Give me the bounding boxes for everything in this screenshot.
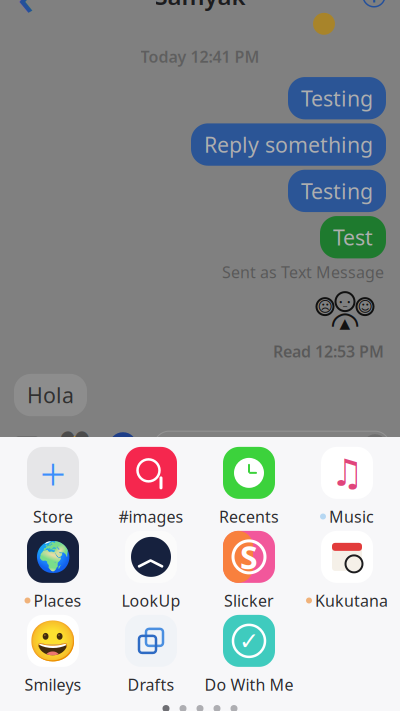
staticText: ︿ <box>136 541 165 577</box>
staticText: ☹ <box>317 298 332 315</box>
staticText: Hola <box>27 381 74 409</box>
staticText: Read 12:53 PM <box>273 341 384 362</box>
staticText: Slicker <box>224 590 274 611</box>
staticText: ☺ <box>357 298 372 315</box>
staticText: •_• <box>339 295 351 308</box>
staticText: Smileys <box>24 674 81 695</box>
button[interactable]: S <box>200 529 298 613</box>
staticText: Testing <box>301 84 373 112</box>
staticText: ▴ <box>339 310 350 335</box>
button[interactable]: 🌍 <box>4 529 102 613</box>
button[interactable]: ♫ <box>298 445 396 529</box>
staticText: + <box>40 443 66 503</box>
button[interactable]: Kukutana <box>298 529 396 613</box>
staticText: #images <box>118 506 183 527</box>
staticText: Kukutana <box>315 590 388 611</box>
staticText: Music <box>329 506 374 527</box>
staticText: iMessage <box>166 432 260 460</box>
button[interactable]: #images <box>102 445 200 529</box>
staticText: ◠ <box>330 304 360 343</box>
staticText: A <box>116 433 129 459</box>
staticText: ♥ <box>57 424 92 468</box>
staticText: Drafts <box>127 674 174 695</box>
staticText: Recents <box>219 506 279 527</box>
staticText: Samyak <box>154 0 245 12</box>
staticText: 😀 <box>28 618 78 664</box>
staticText: i <box>371 0 376 7</box>
button[interactable]: Digital Touch <box>58 431 92 461</box>
staticText: Testing <box>301 177 373 205</box>
button[interactable]: App Store <box>106 431 140 461</box>
button[interactable]: 😀 <box>4 613 102 697</box>
staticText: S <box>240 536 258 578</box>
button[interactable]: Drafts <box>102 613 200 697</box>
staticText: Today 12:41 PM <box>140 46 259 67</box>
staticText: ‹ <box>17 0 34 29</box>
button[interactable]: Back <box>4 0 48 16</box>
staticText: Store <box>33 506 73 527</box>
button[interactable]: Details <box>352 0 396 16</box>
staticText: 🌍 <box>34 540 71 574</box>
staticText: ✌ <box>64 436 86 456</box>
button[interactable]: Message field <box>154 431 390 461</box>
staticText: LookUp <box>121 590 180 611</box>
button[interactable]: ︿ <box>102 529 200 613</box>
staticText: Sent as Text Message <box>222 261 384 283</box>
staticText: Test <box>333 223 373 251</box>
button[interactable]: + <box>4 445 102 529</box>
staticText: Reply something <box>204 130 373 159</box>
button[interactable]: ✓ <box>200 613 298 697</box>
staticText: ♫ <box>330 452 363 494</box>
button[interactable]: Camera <box>10 431 44 461</box>
button[interactable]: Recents <box>200 445 298 529</box>
staticText: Do With Me <box>204 674 293 695</box>
staticText: ✓ <box>239 627 259 654</box>
staticText: Places <box>33 590 81 611</box>
